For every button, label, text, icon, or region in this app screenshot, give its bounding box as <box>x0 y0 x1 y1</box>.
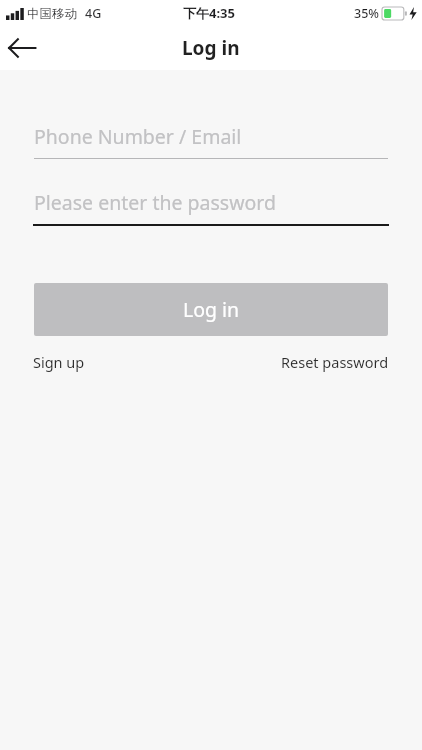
button[interactable]: Reset password <box>281 349 389 375</box>
button[interactable]: Please enter the password <box>34 180 388 224</box>
button[interactable]: Sign up <box>33 349 85 375</box>
staticText: 35% <box>354 5 379 22</box>
button[interactable]: Back <box>0 26 44 70</box>
staticText: 4G <box>85 5 102 22</box>
staticText: Log in <box>182 35 240 61</box>
button[interactable]: Phone Number / Email <box>34 114 388 158</box>
staticText: Reset password <box>281 352 389 372</box>
button[interactable]: Log in <box>34 283 388 336</box>
staticText: 下午4:35 <box>183 4 235 22</box>
staticText: Please enter the password <box>34 189 276 216</box>
staticText: 中国移动 <box>27 6 77 22</box>
staticText: Phone Number / Email <box>34 123 242 150</box>
staticText: Log in <box>183 296 240 323</box>
staticText: Sign up <box>33 352 85 372</box>
